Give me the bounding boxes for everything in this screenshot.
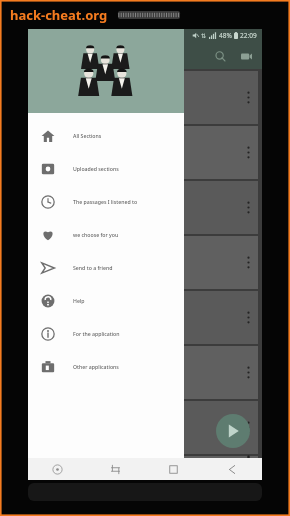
button[interactable]: More options [238, 126, 258, 179]
button[interactable]: Switch apps [86, 458, 144, 480]
button[interactable]: More options [30, 456, 258, 458]
button[interactable]: More options [30, 71, 258, 124]
button[interactable]: More options [30, 236, 258, 289]
staticText: we choose for you [73, 231, 119, 238]
staticText: ⇅ [201, 32, 207, 39]
button[interactable]: Send to a friend [28, 251, 184, 284]
staticText: Uploaded sections [73, 165, 119, 172]
button[interactable]: Search [208, 44, 232, 68]
button[interactable]: Shuffle play [216, 414, 250, 448]
staticText: For the application [73, 330, 120, 337]
button[interactable]: More options [238, 71, 258, 124]
button[interactable]: More options [30, 401, 258, 454]
button[interactable]: Home [144, 458, 203, 480]
button[interactable]: More options [238, 181, 258, 234]
button[interactable]: All Sections [28, 119, 184, 152]
button[interactable]: Recents [28, 458, 86, 480]
button[interactable]: More options [238, 456, 258, 458]
button[interactable]: we choose for you [28, 218, 184, 251]
button[interactable]: More options [238, 401, 258, 454]
button[interactable] [28, 29, 184, 113]
staticText: Send to a friend [73, 264, 113, 271]
button[interactable]: Other applications [28, 350, 184, 383]
button[interactable]: More options [238, 346, 258, 399]
staticText: 48% [219, 31, 232, 40]
button[interactable]: For the application [28, 317, 184, 350]
button[interactable]: More options [238, 236, 258, 289]
button[interactable]: Videos [234, 44, 258, 68]
button[interactable]: Back [203, 458, 262, 480]
staticText: Help [73, 297, 85, 304]
button[interactable]: More options [238, 291, 258, 344]
staticText: The passages I listened to [73, 198, 138, 205]
button[interactable]: More options [30, 126, 258, 179]
button[interactable]: Uploaded sections [28, 152, 184, 185]
staticText: Other applications [73, 363, 119, 370]
staticText: 22:09 [240, 31, 257, 40]
staticText: All Sections [73, 132, 102, 139]
button[interactable]: The passages I listened to [28, 185, 184, 218]
button[interactable]: Help [28, 284, 184, 317]
staticText: hack-cheat.org [10, 6, 108, 24]
button[interactable]: More options [30, 291, 258, 344]
button[interactable]: More options [30, 181, 258, 234]
button[interactable]: More options [30, 346, 258, 399]
